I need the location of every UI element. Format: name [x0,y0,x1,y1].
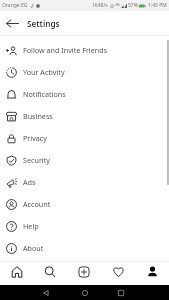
button[interactable]: Ads [0,171,169,193]
button[interactable]: Recents [113,285,129,300]
button[interactable]: Privacy [0,127,169,149]
staticText: Account [23,199,51,209]
staticText: Ads [23,177,36,187]
staticText: Your Activity [23,67,65,77]
button[interactable]: Notifications [0,83,169,105]
button[interactable]: Follow and Invite Friends [0,39,169,61]
staticText: Settings [27,18,60,29]
staticText: 1:45 PM [148,2,167,9]
button[interactable]: Profile [135,262,169,285]
button[interactable]: Home [77,285,93,300]
staticText: Help [23,221,39,231]
staticText: Privacy [23,133,47,143]
staticText: Orange EG [2,2,28,9]
staticText: 57% [128,2,138,9]
staticText: Security [23,155,50,165]
staticText: Business [23,111,53,121]
button[interactable]: Back [38,285,54,300]
button[interactable]: Home [0,262,33,285]
staticText: Notifications [23,89,66,99]
button[interactable]: Help [0,215,169,237]
staticText: About [23,243,44,253]
button[interactable]: Search [33,262,67,285]
staticText: Follow and Invite Friends [23,45,108,55]
staticText: 1648/s [92,2,108,9]
button[interactable]: Back [0,11,24,35]
button[interactable]: Business [0,105,169,127]
button[interactable]: Activity [101,262,135,285]
button[interactable]: About [0,237,169,259]
button[interactable]: Account [0,193,169,215]
button[interactable]: Your Activity [0,61,169,83]
button[interactable]: Add [67,262,101,285]
button[interactable]: Security [0,149,169,171]
